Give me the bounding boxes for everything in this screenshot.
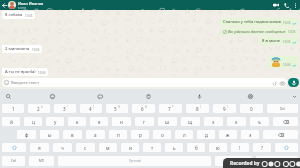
- button[interactable]: Attach: [271, 80, 277, 86]
- button[interactable]: Сколько у тебя подписчиков: [220, 18, 298, 26]
- button[interactable]: ш: [158, 117, 177, 126]
- button[interactable]: GIF: [96, 92, 104, 100]
- button[interactable]: у: [46, 117, 64, 126]
- button[interactable]: А ты не врал(а): [2, 68, 48, 76]
- staticText: ё: [41, 105, 43, 109]
- button[interactable]: [256, 156, 298, 166]
- button[interactable]: й: [2, 117, 20, 126]
- button[interactable]: з: [204, 117, 223, 126]
- button[interactable]: Clipboard: [144, 92, 152, 100]
- button[interactable]: Voice input: [195, 92, 203, 100]
- button[interactable]: Введите текст: [2, 78, 287, 87]
- button[interactable]: [2, 143, 26, 152]
- button[interactable]: ч: [53, 143, 72, 152]
- staticText: х: [235, 119, 238, 125]
- button[interactable]: Ctrl: [2, 156, 25, 166]
- button[interactable]: Вы удалили данное сообщение: [221, 28, 298, 35]
- staticText: Сколько у тебя подписчиков: [223, 19, 281, 25]
- staticText: р: [139, 132, 142, 138]
- button[interactable]: н: [112, 117, 131, 126]
- button[interactable]: [273, 117, 298, 126]
- button[interactable]: я: [30, 143, 49, 152]
- button[interactable]: 3: [54, 104, 76, 113]
- button[interactable]: ъ: [250, 117, 269, 126]
- staticText: %: [118, 105, 121, 109]
- button[interactable]: 1: [2, 104, 24, 113]
- button[interactable]: с: [76, 143, 95, 152]
- button[interactable]: л: [175, 130, 193, 139]
- staticText: ъ: [258, 119, 261, 125]
- staticText: 10:35: [25, 14, 33, 18]
- button[interactable]: Русский: [58, 156, 211, 166]
- button[interactable]: Search: [4, 92, 12, 100]
- staticText: 10:36: [32, 48, 40, 52]
- button[interactable]: 7: [159, 104, 182, 113]
- staticText: ы: [48, 132, 52, 138]
- button[interactable]: щ: [181, 117, 200, 126]
- button[interactable]: 2 миллиона: [2, 45, 42, 53]
- button[interactable]: д: [197, 130, 215, 139]
- button[interactable]: Stickers: [48, 92, 56, 100]
- button[interactable]: ?: [253, 143, 271, 152]
- button[interactable]: Camera: [279, 80, 285, 86]
- button[interactable]: 9: [213, 104, 236, 113]
- button[interactable]: б: [187, 143, 205, 152]
- button[interactable]: ю: [209, 143, 227, 152]
- button[interactable]: 5: [106, 104, 128, 113]
- staticText: э: [249, 132, 252, 138]
- button[interactable]: т: [143, 143, 161, 152]
- staticText: -: [254, 105, 255, 109]
- button[interactable]: и: [121, 143, 139, 152]
- button[interactable]: 10:36: [269, 56, 298, 68]
- staticText: 10:35: [288, 30, 296, 34]
- button[interactable]: ф: [17, 130, 36, 139]
- button[interactable]: 8: [186, 104, 209, 113]
- button[interactable]: х: [227, 117, 246, 126]
- button[interactable]: More options: [291, 1, 300, 10]
- staticText: л: [183, 132, 186, 138]
- button[interactable]: п: [109, 130, 127, 139]
- staticText: 8 в мыле: [262, 38, 281, 44]
- button[interactable]: [263, 130, 298, 139]
- button[interactable]: Del: [267, 104, 298, 113]
- button[interactable]: 8 в мыле: [259, 37, 298, 45]
- button[interactable]: Voice message: [288, 78, 299, 87]
- button[interactable]: а: [86, 130, 105, 139]
- button[interactable]: в: [63, 130, 82, 139]
- button[interactable]: 6: [132, 104, 155, 113]
- staticText: Иван Иванов: [18, 1, 44, 6]
- button[interactable]: г: [135, 117, 154, 126]
- button[interactable]: 0: [240, 104, 263, 113]
- button[interactable]: !: [231, 143, 249, 152]
- staticText: з: [212, 119, 215, 125]
- button[interactable]: МП: [29, 156, 54, 166]
- staticText: 10:36: [283, 63, 291, 67]
- button[interactable]: [275, 143, 298, 152]
- button[interactable]: е: [90, 117, 108, 126]
- button[interactable]: ж: [219, 130, 237, 139]
- staticText: 4: [89, 106, 92, 112]
- button[interactable]: м: [99, 143, 117, 152]
- staticText: 10:36: [38, 71, 46, 75]
- staticText: 7: [168, 106, 171, 112]
- button[interactable]: к: [68, 117, 86, 126]
- button[interactable]: .: [215, 156, 252, 166]
- button[interactable]: Settings: [246, 92, 254, 100]
- button[interactable]: р: [131, 130, 149, 139]
- button[interactable]: 8 собака: [2, 11, 35, 19]
- button[interactable]: Video call: [271, 0, 281, 10]
- button[interactable]: ц: [24, 117, 42, 126]
- button[interactable]: ь: [165, 143, 183, 152]
- button[interactable]: Collapse keyboard: [290, 92, 298, 100]
- button[interactable]: Call: [281, 0, 291, 10]
- button[interactable]: 4: [80, 104, 102, 113]
- staticText: 10:35: [283, 21, 291, 25]
- button[interactable]: э: [241, 130, 259, 139]
- button[interactable]: Back: [1, 2, 8, 9]
- staticText: ц: [32, 119, 35, 125]
- button[interactable]: 2: [28, 104, 50, 113]
- staticText: Вы удалили данное сообщение: [228, 29, 286, 34]
- staticText: 5: [114, 106, 117, 112]
- button[interactable]: о: [153, 130, 171, 139]
- button[interactable]: ы: [40, 130, 59, 139]
